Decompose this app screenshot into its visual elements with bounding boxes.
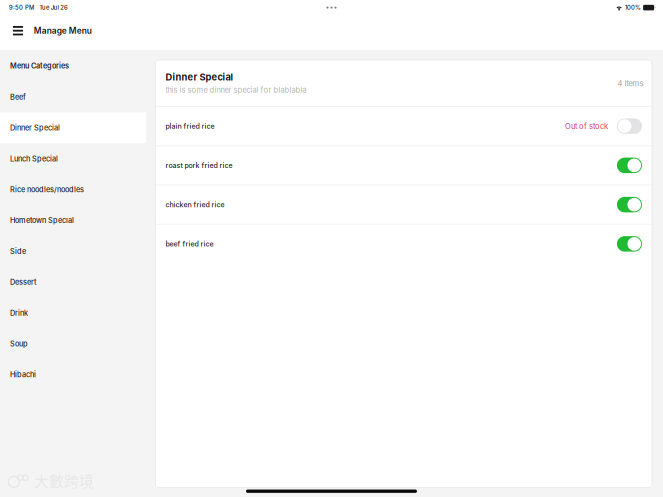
button[interactable]: Hometown Special xyxy=(0,205,146,236)
staticText: Soup xyxy=(10,339,28,348)
button[interactable]: Drink xyxy=(0,298,146,328)
button[interactable]: plain fried rice xyxy=(155,107,652,145)
button[interactable]: chicken fried rice xyxy=(155,185,652,224)
staticText: Dessert xyxy=(10,278,36,287)
staticText: 100% xyxy=(625,4,641,11)
staticText: plain fried rice xyxy=(165,122,214,130)
button[interactable]: Lunch Special xyxy=(0,143,146,174)
staticText: Lunch Special xyxy=(10,154,58,163)
button[interactable]: roast pork fried rice xyxy=(155,146,652,184)
staticText: Beef xyxy=(10,93,26,101)
staticText: this is some dinner special for blablabl… xyxy=(165,85,306,95)
staticText: Dinner Special xyxy=(165,71,233,83)
staticText: Dinner Special xyxy=(10,123,60,132)
staticText: Rice noodles/noodles xyxy=(10,185,84,194)
staticText: Drink xyxy=(10,308,28,317)
button[interactable]: Dessert xyxy=(0,267,146,298)
button[interactable]: Side xyxy=(0,236,146,267)
staticText: Hibachi xyxy=(10,370,36,379)
staticText: Out of stock xyxy=(565,121,608,131)
button[interactable]: Hibachi xyxy=(0,359,146,390)
staticText: Tue Jul 26 xyxy=(39,4,68,11)
staticText: Manage Menu xyxy=(34,26,92,36)
staticText: beef fried rice xyxy=(165,240,213,248)
staticText: roast pork fried rice xyxy=(165,161,232,170)
button[interactable]: Rice noodles/noodles xyxy=(0,174,146,205)
staticText: Menu Categories xyxy=(10,61,69,70)
staticText: Hometown Special xyxy=(10,216,74,225)
button[interactable]: Menu xyxy=(6,15,30,47)
button[interactable]: beef fried rice xyxy=(155,225,652,263)
button[interactable]: Beef xyxy=(0,82,146,112)
staticText: 4 Items xyxy=(617,79,643,88)
button[interactable]: Dinner Special xyxy=(0,112,146,143)
button[interactable]: Soup xyxy=(0,328,146,359)
staticText: Side xyxy=(10,247,26,256)
staticText: 大數跨境 xyxy=(34,470,94,491)
staticText: chicken fried rice xyxy=(165,200,224,209)
staticText: 9:50 PM xyxy=(9,4,34,11)
